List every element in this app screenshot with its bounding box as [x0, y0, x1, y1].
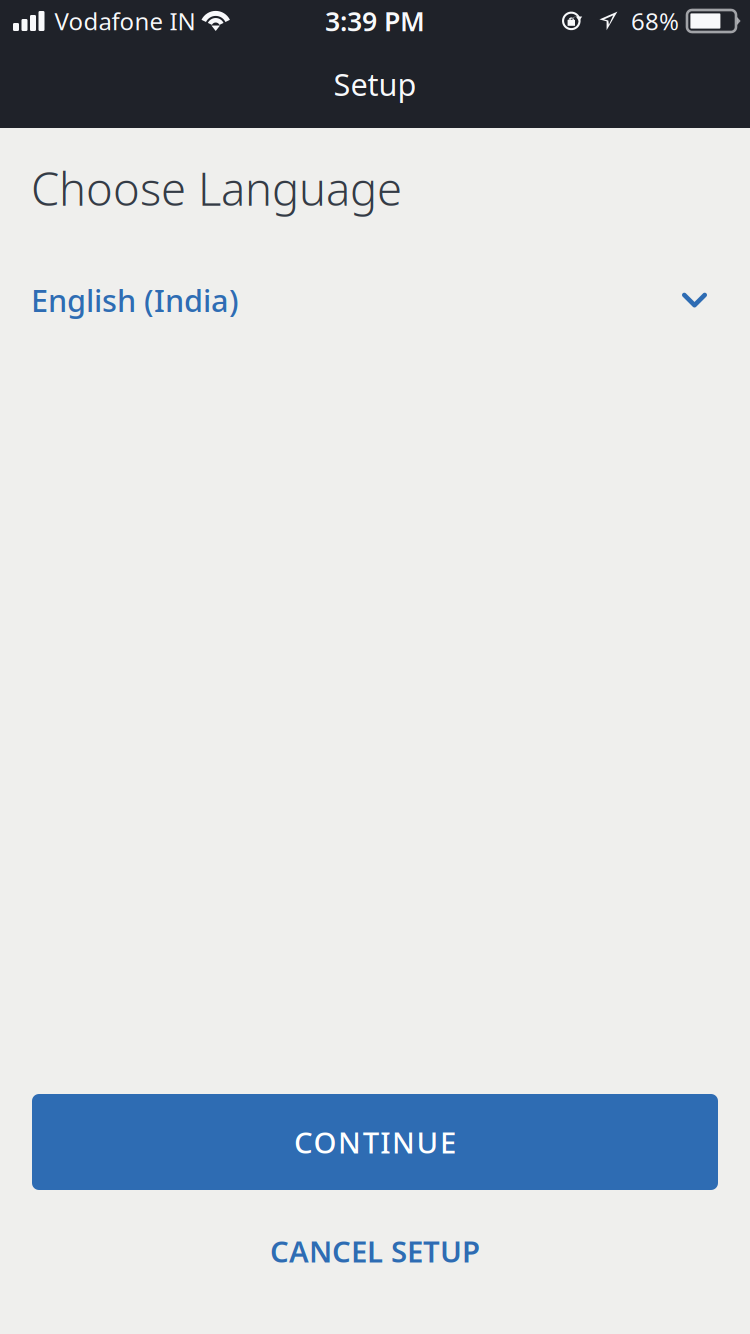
staticText: Setup	[333, 64, 416, 104]
staticText: English (India)	[31, 280, 239, 320]
staticText: 3:39 PM	[325, 3, 425, 39]
staticText: CONTINUE	[294, 1122, 456, 1161]
staticText: Vodafone IN	[54, 5, 195, 37]
staticText: CANCEL SETUP	[270, 1231, 480, 1270]
staticText: Choose Language	[31, 158, 402, 218]
button[interactable]: CONTINUE	[32, 1094, 718, 1190]
staticText: 68%	[631, 5, 679, 37]
button[interactable]: English (India)	[31, 273, 707, 327]
button[interactable]: CANCEL SETUP	[0, 1221, 750, 1281]
